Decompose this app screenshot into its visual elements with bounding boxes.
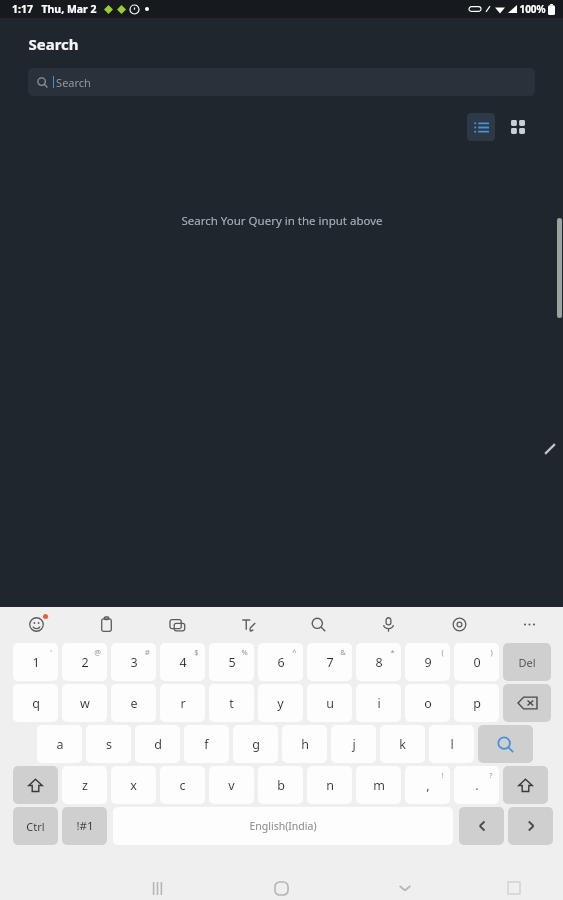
button[interactable]: 9 xyxy=(405,643,450,681)
staticText: 0 xyxy=(473,654,481,671)
button[interactable]: 7 xyxy=(307,643,352,681)
button[interactable]: Settings xyxy=(445,610,473,638)
button[interactable]: v xyxy=(209,766,254,804)
staticText: Search Your Query in the input above xyxy=(181,213,383,229)
button[interactable]: 5 xyxy=(209,643,254,681)
button[interactable]: g xyxy=(233,725,278,763)
button[interactable]: Del xyxy=(503,643,551,681)
button[interactable]: Backspace xyxy=(503,684,551,722)
button[interactable]: r xyxy=(160,684,205,722)
button[interactable]: u xyxy=(307,684,352,722)
staticText: o xyxy=(424,695,432,712)
staticText: c xyxy=(179,777,186,794)
staticText: @ xyxy=(94,647,101,657)
button[interactable]: Text edit xyxy=(234,610,262,638)
button[interactable]: Back xyxy=(388,871,422,900)
staticText: 2 xyxy=(81,654,89,671)
button[interactable]: 8 xyxy=(356,643,401,681)
staticText: . xyxy=(475,777,479,794)
button[interactable]: l xyxy=(429,725,474,763)
button[interactable]: 3 xyxy=(111,643,156,681)
button[interactable]: x xyxy=(111,766,156,804)
button[interactable]: Next xyxy=(508,807,553,845)
button[interactable]: y xyxy=(258,684,303,722)
button[interactable]: w xyxy=(62,684,107,722)
staticText: 100% xyxy=(519,2,546,16)
staticText: Ctrl xyxy=(26,819,45,834)
staticText: ) xyxy=(490,647,493,657)
button[interactable]: 1 xyxy=(13,643,58,681)
button[interactable]: i xyxy=(356,684,401,722)
button[interactable]: z xyxy=(62,766,107,804)
button[interactable]: Search xyxy=(304,610,332,638)
button[interactable]: Grid view xyxy=(504,113,532,141)
staticText: !#1 xyxy=(76,818,94,834)
button[interactable]: 2 xyxy=(62,643,107,681)
staticText: English(India) xyxy=(249,819,317,833)
button[interactable]: List view xyxy=(467,113,495,141)
button[interactable]: Search xyxy=(28,68,535,96)
button[interactable]: t xyxy=(209,684,254,722)
button[interactable]: Hide keyboard xyxy=(497,871,531,900)
button[interactable]: !#1 xyxy=(62,807,107,845)
staticText: 9 xyxy=(424,654,432,671)
button[interactable]: Recents xyxy=(140,871,174,900)
button[interactable]: , xyxy=(405,766,450,804)
button[interactable]: . xyxy=(454,766,499,804)
staticText: u xyxy=(326,695,334,712)
staticText: 5 xyxy=(228,654,236,671)
button[interactable]: 0 xyxy=(454,643,499,681)
button[interactable]: Previous xyxy=(459,807,504,845)
staticText: b xyxy=(277,777,285,794)
staticText: r xyxy=(180,695,186,712)
staticText: Search xyxy=(28,34,79,54)
button[interactable]: 4 xyxy=(160,643,205,681)
button[interactable]: p xyxy=(454,684,499,722)
staticText: , xyxy=(426,777,430,794)
staticText: z xyxy=(82,777,88,794)
button[interactable]: English(India) xyxy=(113,807,453,845)
button[interactable]: Home xyxy=(264,871,298,900)
staticText: a xyxy=(56,736,64,753)
button[interactable]: c xyxy=(160,766,205,804)
button[interactable]: Shift xyxy=(13,766,58,804)
button[interactable]: h xyxy=(282,725,327,763)
button[interactable]: f xyxy=(184,725,229,763)
staticText: y xyxy=(277,695,284,712)
staticText: ? xyxy=(489,770,493,780)
staticText: 4 xyxy=(179,654,187,671)
button[interactable]: m xyxy=(356,766,401,804)
button[interactable]: k xyxy=(380,725,425,763)
button[interactable]: Voice input xyxy=(374,610,402,638)
button[interactable]: s xyxy=(86,725,131,763)
staticText: 7 xyxy=(326,654,334,671)
button[interactable]: e xyxy=(111,684,156,722)
button[interactable]: j xyxy=(331,725,376,763)
button[interactable]: q xyxy=(13,684,58,722)
button[interactable]: Stickers xyxy=(163,610,191,638)
staticText: g xyxy=(252,736,260,753)
staticText: 3 xyxy=(130,654,138,671)
staticText: v xyxy=(228,777,235,794)
button[interactable]: n xyxy=(307,766,352,804)
staticText: Del xyxy=(518,655,536,670)
staticText: Thu, Mar 2 xyxy=(41,2,97,16)
button[interactable]: d xyxy=(135,725,180,763)
button[interactable]: Clipboard xyxy=(92,610,120,638)
button[interactable]: Search xyxy=(478,725,533,763)
staticText: m xyxy=(373,777,385,794)
button[interactable]: 6 xyxy=(258,643,303,681)
button[interactable]: b xyxy=(258,766,303,804)
staticText: 8 xyxy=(375,654,383,671)
button[interactable]: Ctrl xyxy=(13,807,58,845)
button[interactable]: More xyxy=(515,610,543,638)
staticText: $ xyxy=(194,647,199,657)
button[interactable]: a xyxy=(37,725,82,763)
button[interactable]: Emoji xyxy=(22,610,50,638)
staticText: q xyxy=(32,695,40,712)
staticText: w xyxy=(80,695,90,712)
button[interactable]: Shift xyxy=(503,766,548,804)
staticText: j xyxy=(352,736,356,753)
staticText: * xyxy=(390,647,395,657)
button[interactable]: o xyxy=(405,684,450,722)
